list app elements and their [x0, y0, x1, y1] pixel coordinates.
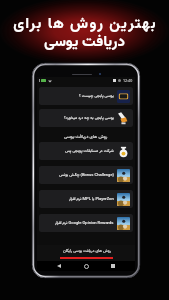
staticText: یوسی پابجی به چه درد میخورد؟ [64, 115, 114, 121]
button[interactable]: Recents [108, 261, 118, 271]
staticText: نرم افزار MPL یا PlayerZon [69, 196, 114, 202]
staticText: 12:40 [123, 78, 133, 83]
button[interactable]: یوسی پابجی به چه درد میخورد؟ [39, 109, 133, 127]
staticText: روش های دریافت یوسی رایگان [63, 248, 111, 254]
staticText: بهترین روش ها برای [13, 13, 157, 36]
staticText: دریافت یوسی [44, 31, 125, 54]
staticText: شرکت در مسابقات پوبجی پس [65, 148, 114, 154]
staticText: یوسی پابجی چیست ؟ [79, 93, 114, 99]
button[interactable]: روش های دریافت یوسی رایگان [37, 245, 135, 261]
staticText: چالش بونس (Bonus Challenge) [59, 172, 114, 178]
button[interactable]: شرکت در مسابقات پوبجی پس [39, 142, 133, 160]
button[interactable]: چالش بونس (Bonus Challenge) [39, 166, 133, 184]
staticText: نرم افزار Google Opinion Rewards [55, 220, 114, 226]
button[interactable]: یوسی پابجی چیست ؟ [39, 87, 133, 105]
button[interactable]: Back [54, 261, 64, 271]
button[interactable]: نرم افزار Google Opinion Rewards [39, 214, 133, 232]
staticText: روش های دریافت یوسی [64, 133, 108, 140]
button[interactable]: نرم افزار MPL یا PlayerZon [39, 190, 133, 208]
button[interactable]: Home [81, 261, 91, 271]
